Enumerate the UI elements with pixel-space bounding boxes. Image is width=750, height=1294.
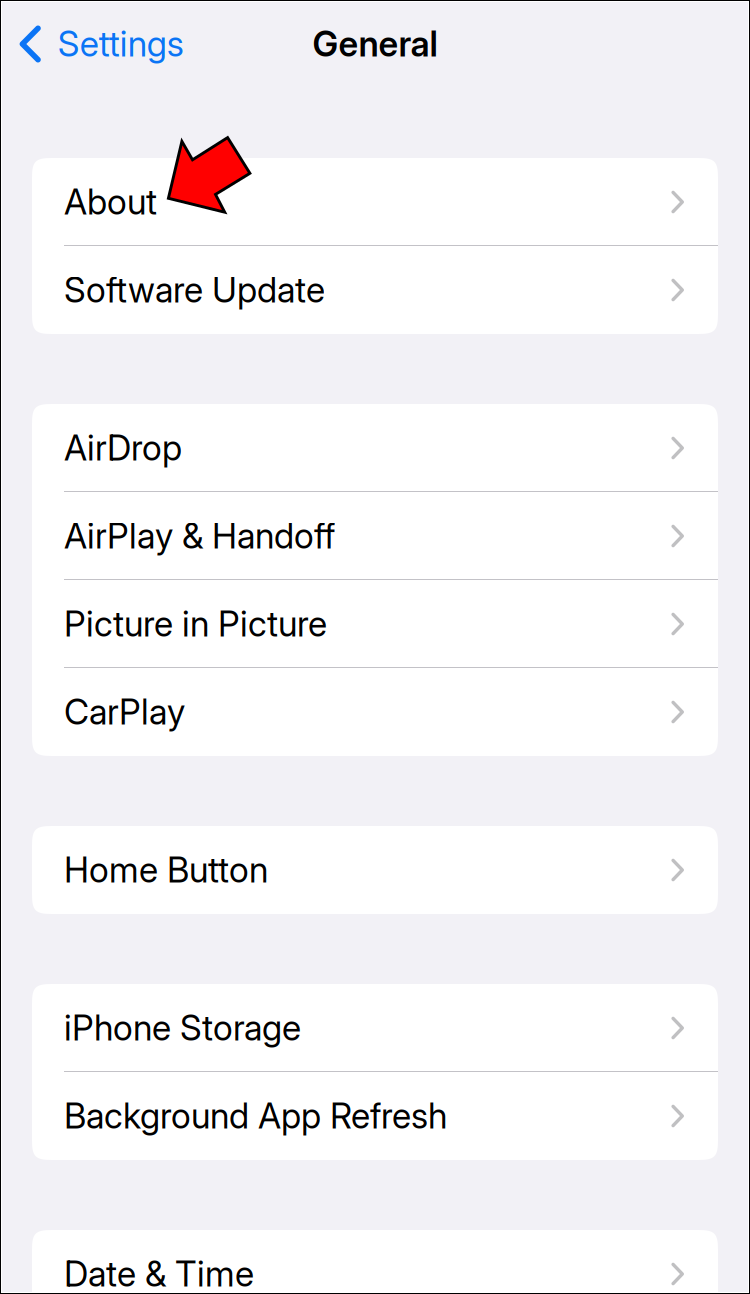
button[interactable]: About bbox=[32, 158, 718, 246]
button[interactable]: iPhone Storage bbox=[32, 984, 718, 1072]
button[interactable]: AirPlay & Handoff bbox=[32, 492, 718, 580]
staticText: Software Update bbox=[64, 269, 325, 311]
button[interactable]: Home Button bbox=[32, 826, 718, 914]
staticText: Picture in Picture bbox=[64, 603, 327, 645]
staticText: About bbox=[64, 181, 157, 223]
button[interactable]: CarPlay bbox=[32, 668, 718, 756]
staticText: Home Button bbox=[64, 849, 268, 891]
staticText: CarPlay bbox=[64, 691, 185, 733]
button[interactable]: AirDrop bbox=[32, 404, 718, 492]
button[interactable]: Picture in Picture bbox=[32, 580, 718, 668]
staticText: AirDrop bbox=[64, 427, 182, 469]
staticText: Background App Refresh bbox=[64, 1095, 447, 1137]
staticText: Date & Time bbox=[64, 1253, 254, 1294]
staticText: iPhone Storage bbox=[64, 1007, 301, 1049]
button[interactable]: Settings bbox=[0, 0, 196, 88]
staticText: AirPlay & Handoff bbox=[64, 515, 335, 557]
staticText: Settings bbox=[58, 23, 184, 65]
button[interactable]: Date & Time bbox=[32, 1230, 718, 1294]
button[interactable]: Software Update bbox=[32, 246, 718, 334]
button[interactable]: Background App Refresh bbox=[32, 1072, 718, 1160]
staticText: General bbox=[312, 23, 437, 65]
